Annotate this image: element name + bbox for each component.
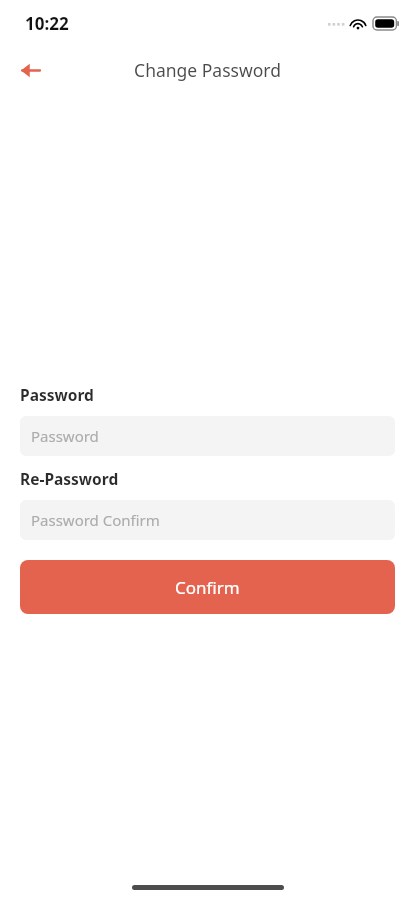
button[interactable]: Password Confirm — [20, 500, 395, 540]
staticText: Re-Password — [20, 468, 119, 489]
staticText: Password Confirm — [31, 510, 160, 530]
button[interactable]: Confirm — [20, 560, 395, 614]
staticText: Password — [20, 384, 94, 405]
staticText: Change Password — [134, 58, 281, 82]
button[interactable]: Password — [20, 416, 395, 456]
staticText: 10:22 — [25, 12, 69, 35]
staticText: Password — [31, 426, 99, 446]
staticText: Confirm — [175, 576, 240, 599]
button[interactable]: Back — [10, 50, 50, 90]
